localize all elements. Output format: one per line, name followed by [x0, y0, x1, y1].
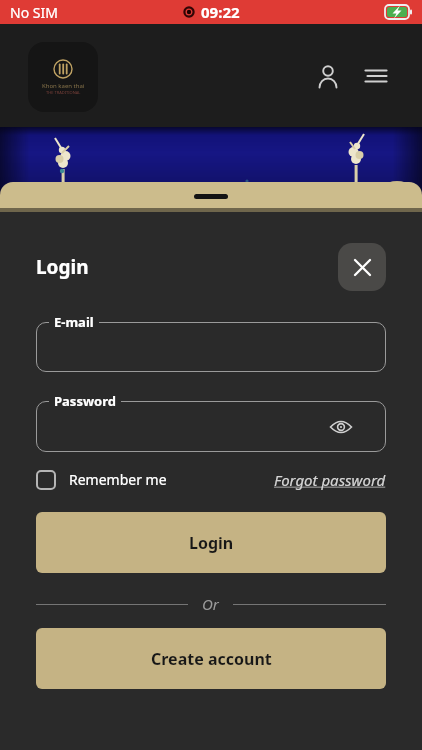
staticText: E-mail: [54, 313, 94, 331]
staticText: THE TRADITIONAL: [46, 90, 81, 95]
staticText: Or: [202, 594, 219, 614]
staticText: Login: [189, 532, 234, 554]
button[interactable]: Create account: [36, 628, 386, 689]
staticText: Create account: [151, 648, 272, 670]
staticText: No SIM: [10, 3, 58, 22]
button[interactable]: [36, 401, 386, 452]
button[interactable]: [36, 322, 386, 372]
staticText: Login: [36, 254, 89, 280]
staticText: Password: [54, 392, 116, 410]
button[interactable]: Forgot password: [274, 470, 386, 490]
button[interactable]: [338, 243, 386, 291]
button[interactable]: [356, 56, 396, 96]
button[interactable]: [330, 416, 352, 438]
button[interactable]: [36, 470, 56, 490]
button[interactable]: Khon kaen thai: [28, 42, 98, 112]
button[interactable]: [308, 56, 348, 96]
button[interactable]: Login: [36, 512, 386, 573]
staticText: 09:22: [201, 2, 240, 22]
staticText: Remember me: [69, 470, 167, 489]
staticText: Khon kaen thai: [42, 82, 85, 90]
